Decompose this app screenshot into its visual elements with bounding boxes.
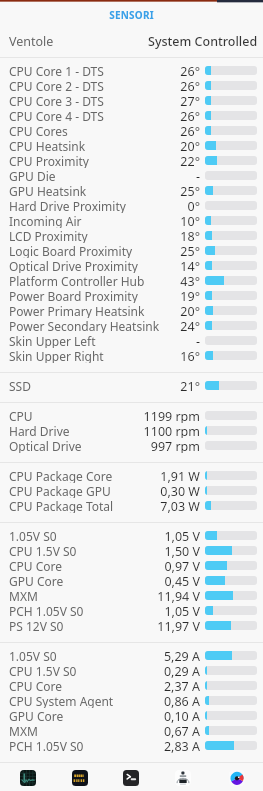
button[interactable]: MXM — [0, 588, 263, 603]
staticText: 16° — [180, 348, 200, 363]
staticText: - — [195, 333, 200, 348]
button[interactable]: CPU Core 2 - DTS — [0, 78, 263, 93]
button[interactable]: CPU Core — [0, 678, 263, 693]
button[interactable]: Virtual Machine — [175, 764, 191, 791]
button[interactable]: PCH 1.05V S0 — [0, 603, 263, 618]
staticText: CPU Package Total — [9, 498, 160, 513]
staticText: GPU Heatsink — [9, 183, 180, 198]
staticText: 0,30 W — [160, 483, 200, 498]
staticText: CPU Heatsink — [9, 138, 180, 153]
staticText: 1,05 V — [164, 603, 200, 618]
staticText: 1.05V S0 — [9, 528, 164, 543]
button[interactable]: CPU Core — [0, 558, 263, 573]
staticText: Optical Drive — [9, 438, 150, 453]
staticText: 1,91 W — [160, 468, 200, 483]
button[interactable]: CPU Core 4 - DTS — [0, 108, 263, 123]
staticText: CPU 1.5V S0 — [9, 663, 163, 678]
staticText: 7,03 W — [160, 498, 200, 513]
button[interactable]: CPU Package Total — [0, 498, 263, 513]
staticText: 26° — [180, 108, 200, 123]
button[interactable]: Power Board Proximity — [0, 288, 263, 303]
staticText: 19° — [180, 288, 200, 303]
staticText: SENSORI — [0, 8, 263, 22]
button[interactable]: CPU 1.5V S0 — [0, 543, 263, 558]
staticText: GPU Core — [9, 708, 163, 723]
staticText: 2,83 A — [163, 738, 200, 753]
staticText: 1,50 V — [164, 543, 200, 558]
staticText: 24° — [180, 318, 200, 333]
staticText: 26° — [180, 78, 200, 93]
staticText: 25° — [180, 243, 200, 258]
staticText: 0,97 V — [164, 558, 200, 573]
staticText: 1.05V S0 — [9, 648, 163, 663]
button[interactable]: PS 12V S0 — [0, 618, 263, 633]
button[interactable]: CPU System Agent — [0, 693, 263, 708]
button[interactable]: iStat Menus — [20, 764, 36, 791]
button[interactable]: GPU Core — [0, 708, 263, 723]
button[interactable]: GPU Die — [0, 168, 263, 183]
staticText: 0,67 A — [163, 723, 200, 738]
button[interactable]: CPU Cores — [0, 123, 263, 138]
button[interactable]: Terminal — [123, 764, 139, 791]
staticText: CPU Proximity — [9, 153, 180, 168]
button[interactable]: CPU Core 3 - DTS — [0, 93, 263, 108]
button[interactable]: MXM — [0, 723, 263, 738]
staticText: 21° — [180, 378, 200, 393]
button[interactable]: Hard Drive Proximity — [0, 198, 263, 213]
staticText: SSD — [9, 378, 180, 393]
button[interactable]: Platform Controller Hub — [0, 273, 263, 288]
staticText: Skin Upper Right — [9, 348, 180, 363]
button[interactable]: Logic Board Proximity — [0, 243, 263, 258]
button[interactable]: CPU Heatsink — [0, 138, 263, 153]
staticText: PCH 1.05V S0 — [9, 603, 164, 618]
button[interactable]: Skin Upper Left — [0, 333, 263, 348]
button[interactable]: Optical Drive Proximity — [0, 258, 263, 273]
staticText: CPU Package GPU — [9, 483, 160, 498]
staticText: GPU Die — [9, 168, 195, 183]
button[interactable]: PCH 1.05V S0 — [0, 738, 263, 753]
staticText: Power Primary Heatsink — [9, 303, 180, 318]
button[interactable]: CPU Core 1 - DTS — [0, 63, 263, 78]
staticText: 0,45 V — [164, 573, 200, 588]
button[interactable]: GPU Heatsink — [0, 183, 263, 198]
staticText: CPU Core 3 - DTS — [9, 93, 180, 108]
staticText: 26° — [180, 123, 200, 138]
button[interactable]: Browser — [229, 764, 245, 791]
button[interactable]: 1.05V S0 — [0, 648, 263, 663]
staticText: Logic Board Proximity — [9, 243, 180, 258]
button[interactable]: CPU Package GPU — [0, 483, 263, 498]
staticText: Power Secondary Heatsink — [9, 318, 180, 333]
staticText: 43° — [180, 273, 200, 288]
staticText: 0,29 A — [163, 663, 200, 678]
staticText: 0,10 A — [163, 708, 200, 723]
staticText: 20° — [180, 138, 200, 153]
staticText: CPU 1.5V S0 — [9, 543, 164, 558]
button[interactable]: CPU Proximity — [0, 153, 263, 168]
button[interactable]: CPU Package Core — [0, 468, 263, 483]
button[interactable]: Skin Upper Right — [0, 348, 263, 363]
staticText: 25° — [180, 183, 200, 198]
button[interactable]: LCD Proximity — [0, 228, 263, 243]
button[interactable]: Power Secondary Heatsink — [0, 318, 263, 333]
button[interactable]: SSD — [0, 378, 263, 393]
staticText: CPU Package Core — [9, 468, 160, 483]
staticText: 0° — [187, 198, 200, 213]
button[interactable]: CPU 1.5V S0 — [0, 663, 263, 678]
button[interactable]: Optical Drive — [0, 438, 263, 453]
button[interactable]: GPU Core — [0, 573, 263, 588]
staticText: 22° — [180, 153, 200, 168]
button[interactable]: Hard Drive — [0, 423, 263, 438]
staticText: CPU System Agent — [9, 693, 163, 708]
button[interactable]: Power Primary Heatsink — [0, 303, 263, 318]
staticText: GPU Core — [9, 573, 164, 588]
staticText: 11,94 V — [157, 588, 200, 603]
button[interactable]: Incoming Air — [0, 213, 263, 228]
staticText: 27° — [180, 93, 200, 108]
button[interactable]: 1.05V S0 — [0, 528, 263, 543]
staticText: CPU Core — [9, 558, 164, 573]
staticText: CPU Core 1 - DTS — [9, 63, 180, 78]
button[interactable]: CPU — [0, 408, 263, 423]
staticText: MXM — [9, 723, 163, 738]
button[interactable]: Alarm — [72, 764, 88, 791]
staticText: CPU Core 2 - DTS — [9, 78, 180, 93]
